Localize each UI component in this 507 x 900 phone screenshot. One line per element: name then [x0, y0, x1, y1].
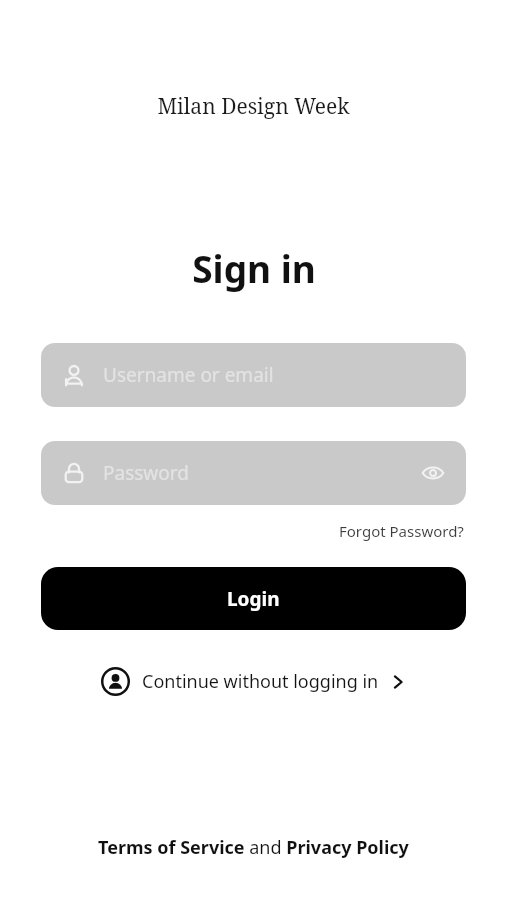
button[interactable]: Password	[41, 441, 466, 505]
staticText: Continue without logging in	[142, 669, 379, 694]
button[interactable]: Login	[41, 567, 466, 630]
button[interactable]: Username or email	[41, 343, 466, 407]
staticText: Sign in	[192, 243, 316, 293]
staticText: Milan Design Week	[157, 92, 350, 121]
staticText: Username or email	[103, 362, 448, 388]
staticText: Login	[227, 586, 280, 612]
button[interactable]: Forgot Password?	[337, 519, 466, 543]
staticText: Password	[103, 460, 418, 486]
staticText: Terms of Service and Privacy Policy	[98, 835, 409, 860]
staticText: Forgot Password?	[339, 521, 464, 541]
button[interactable]: Show password	[418, 458, 448, 488]
button[interactable]: Terms of Service and Privacy Policy	[92, 831, 415, 864]
button[interactable]: Continue without logging in	[93, 661, 415, 702]
